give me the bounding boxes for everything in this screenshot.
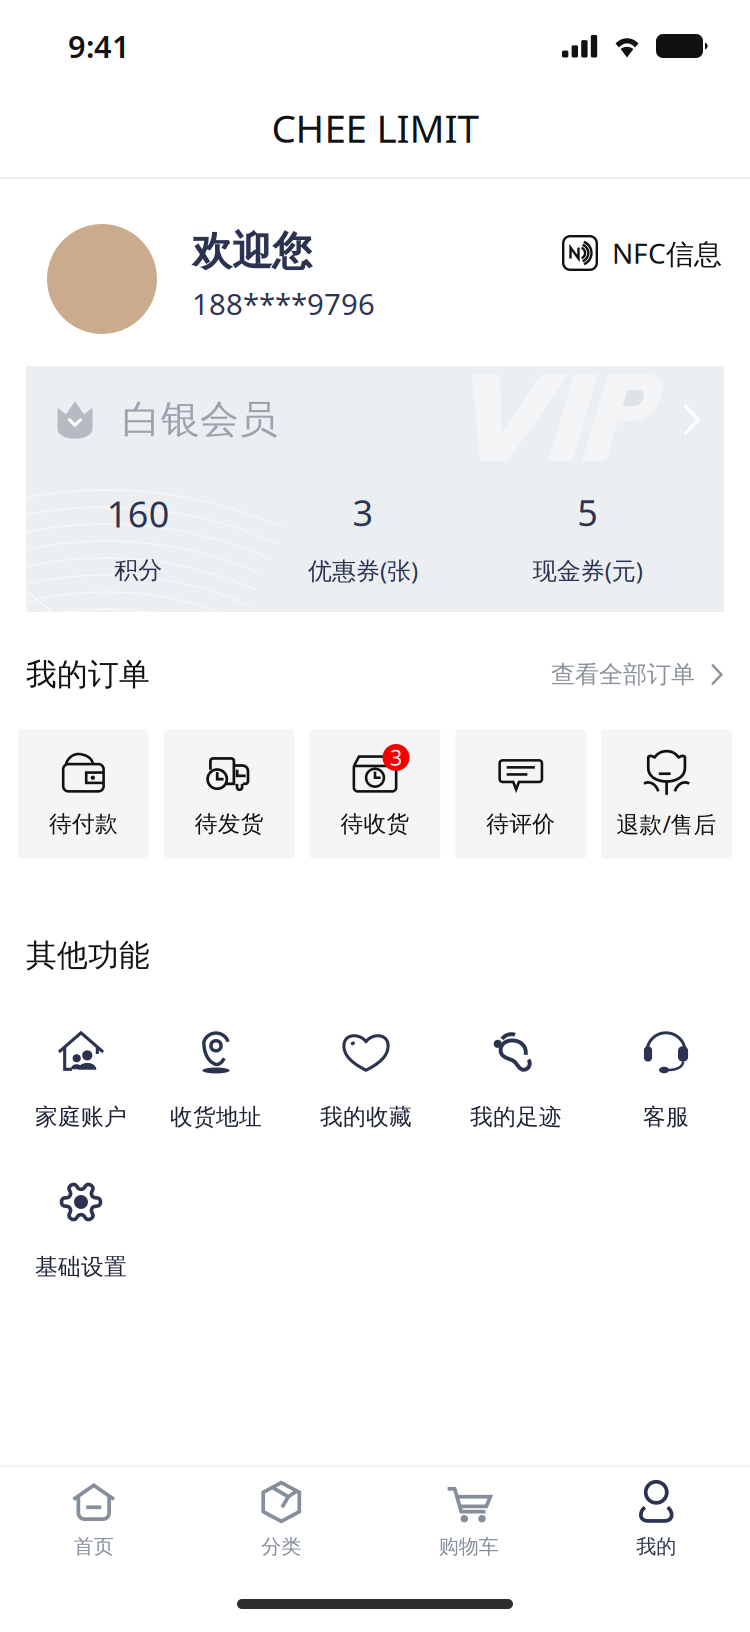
- staticText: 待发货: [195, 810, 264, 838]
- button[interactable]: 待付款: [18, 729, 149, 859]
- staticText: 客服: [643, 1103, 689, 1131]
- staticText: 3: [352, 488, 373, 536]
- button[interactable]: 待评价: [455, 729, 586, 859]
- staticText: 9:41: [68, 26, 130, 66]
- staticText: 我的足迹: [470, 1103, 562, 1131]
- staticText: 188****9796: [192, 284, 375, 323]
- staticText: CHEE LIMIT: [271, 102, 478, 153]
- staticText: 购物车: [439, 1534, 499, 1559]
- button[interactable]: 白银会员: [26, 366, 724, 612]
- staticText: 5: [577, 488, 598, 536]
- button[interactable]: 收货地址: [146, 1028, 286, 1128]
- button[interactable]: NFC信息: [562, 234, 722, 272]
- button[interactable]: 待发货: [164, 729, 295, 859]
- button[interactable]: 我的收藏: [296, 1028, 436, 1128]
- button[interactable]: 退款/售后: [601, 729, 732, 859]
- button[interactable]: 首页: [0, 1480, 187, 1557]
- staticText: 我的: [636, 1534, 676, 1559]
- staticText: 现金券(元): [533, 554, 643, 586]
- button[interactable]: 3: [310, 729, 440, 859]
- staticText: 待收货: [340, 810, 409, 838]
- button[interactable]: 查看全部订单: [551, 660, 724, 689]
- button[interactable]: 家庭账户: [11, 1028, 151, 1128]
- button[interactable]: 基础设置: [11, 1178, 151, 1278]
- staticText: NFC信息: [612, 234, 722, 272]
- staticText: 白银会员: [122, 396, 278, 443]
- staticText: 160: [107, 490, 170, 537]
- staticText: 我的订单: [26, 656, 150, 693]
- staticText: 我的收藏: [320, 1103, 412, 1131]
- staticText: 分类: [261, 1534, 301, 1559]
- staticText: 欢迎您: [192, 227, 312, 276]
- staticText: 积分: [114, 555, 162, 585]
- staticText: 待评价: [486, 810, 555, 838]
- staticText: 家庭账户: [35, 1103, 127, 1131]
- staticText: 基础设置: [35, 1253, 127, 1281]
- staticText: 收货地址: [170, 1103, 262, 1131]
- staticText: 3: [390, 743, 402, 772]
- staticText: 其他功能: [26, 937, 150, 974]
- staticText: 待付款: [49, 810, 118, 838]
- button[interactable]: 分类: [187, 1480, 375, 1557]
- button[interactable]: 我的: [562, 1480, 750, 1557]
- button[interactable]: 我的足迹: [446, 1028, 586, 1128]
- button[interactable]: 客服: [596, 1028, 736, 1128]
- staticText: 退款/售后: [617, 809, 717, 839]
- staticText: 首页: [74, 1534, 114, 1559]
- button[interactable]: 购物车: [375, 1480, 562, 1557]
- staticText: 查看全部订单: [551, 660, 695, 689]
- staticText: 优惠券(张): [308, 554, 418, 586]
